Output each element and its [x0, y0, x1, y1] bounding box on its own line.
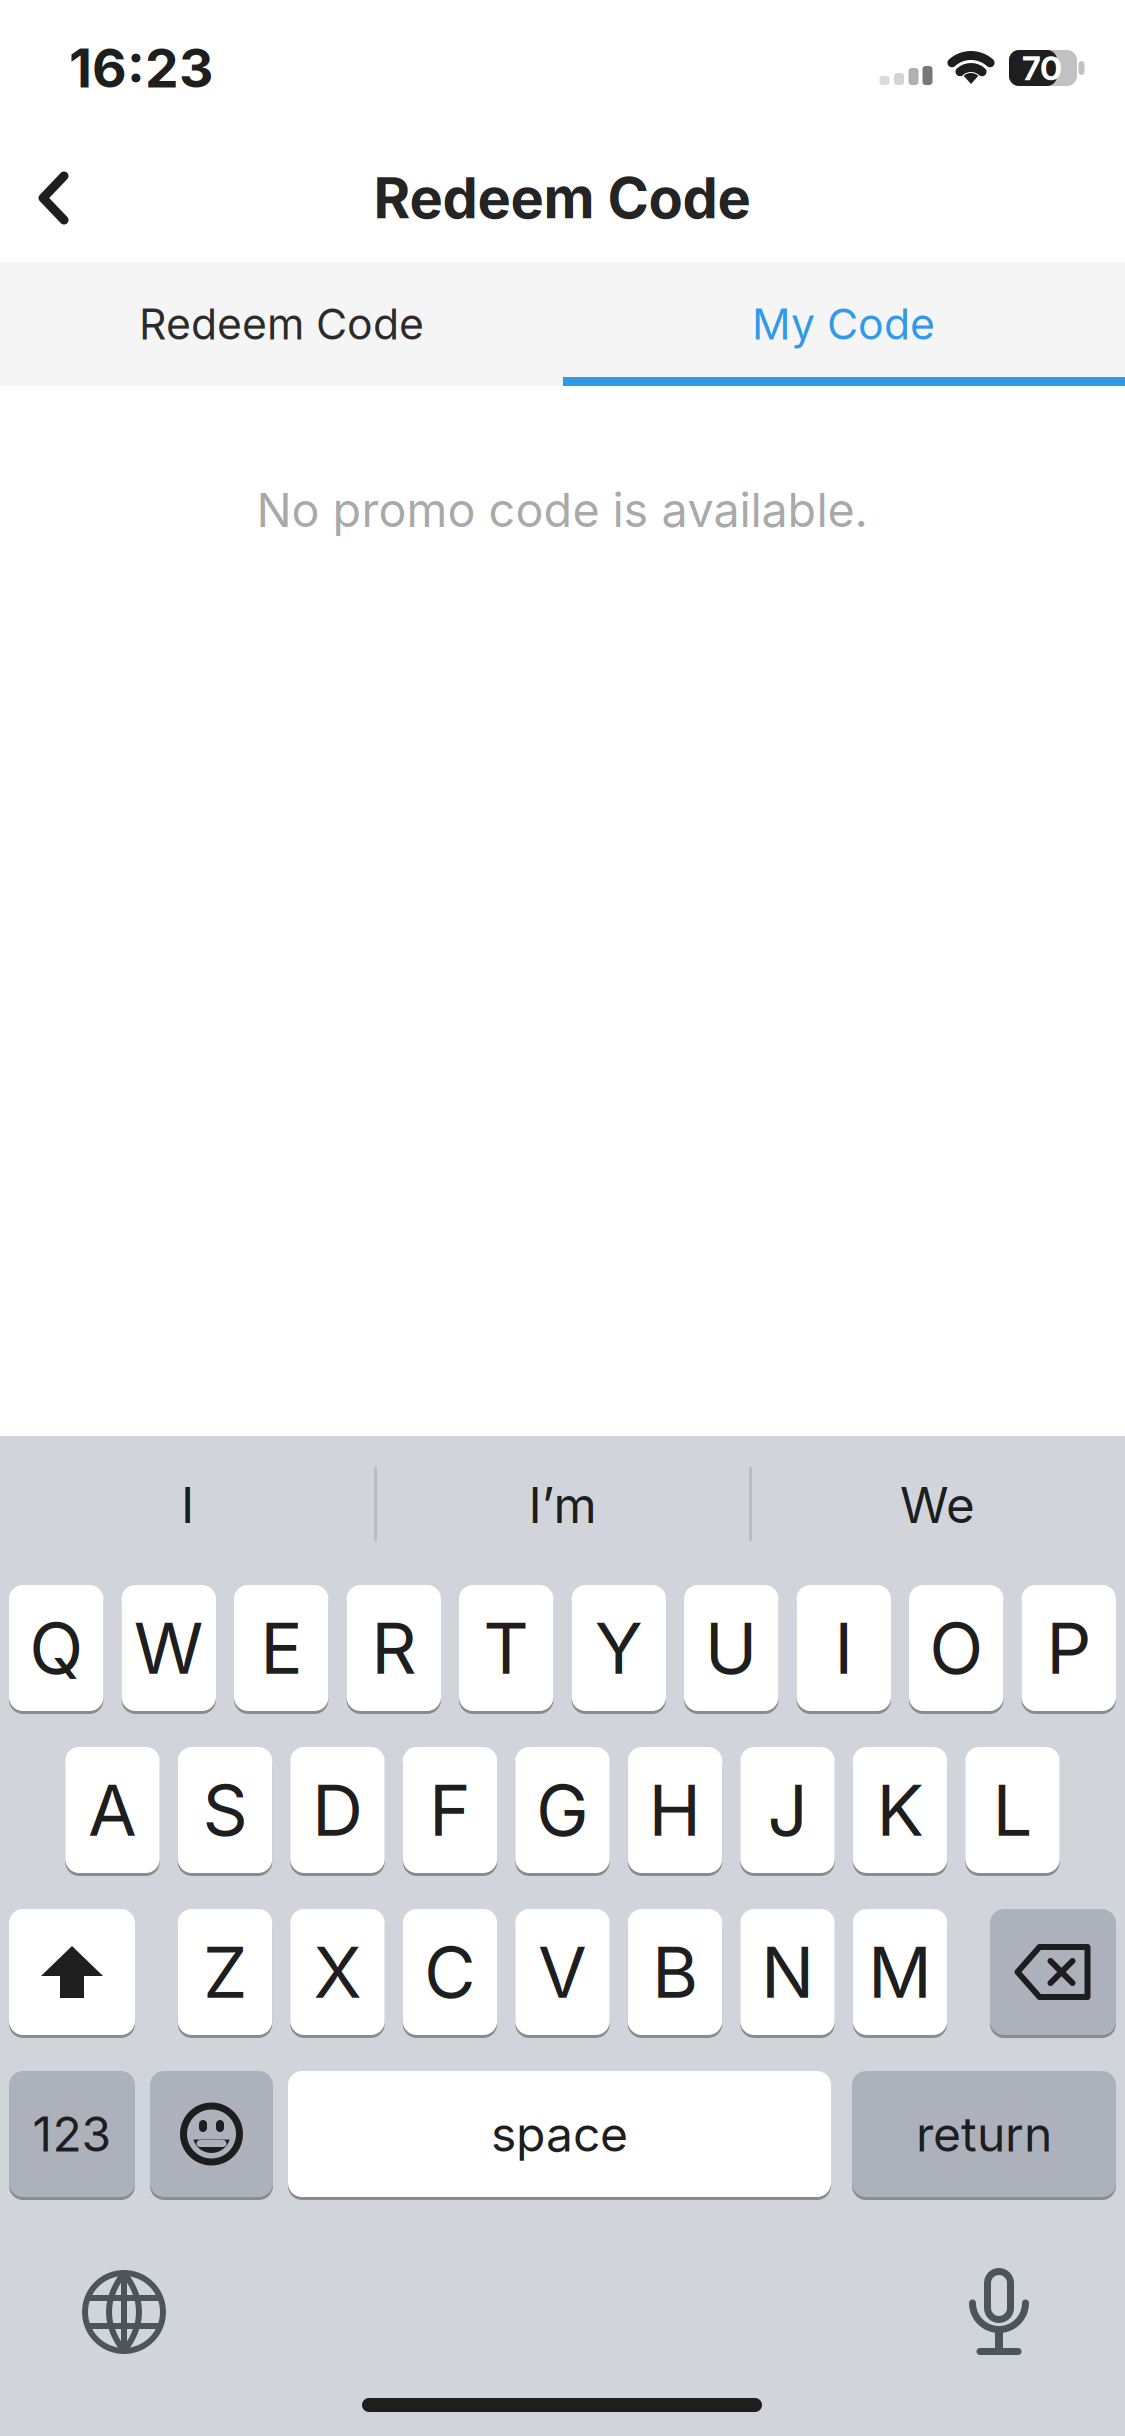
- staticText: space: [491, 2106, 628, 2162]
- staticText: H: [648, 1768, 701, 1852]
- button[interactable]: Next keyboard: [64, 2252, 184, 2372]
- staticText: M: [868, 1930, 932, 2014]
- button[interactable]: W: [121, 1585, 216, 1711]
- button[interactable]: S: [178, 1747, 272, 1873]
- button[interactable]: X: [290, 1909, 385, 2035]
- staticText: No promo code is available.: [256, 482, 867, 538]
- button[interactable]: We: [767, 1440, 1107, 1570]
- button[interactable]: O: [909, 1585, 1003, 1711]
- button[interactable]: R: [346, 1585, 441, 1711]
- button[interactable]: Dictation: [944, 2257, 1054, 2367]
- button[interactable]: L: [965, 1747, 1060, 1873]
- staticText: Y: [595, 1606, 643, 1690]
- staticText: N: [761, 1930, 814, 2014]
- staticText: V: [538, 1930, 587, 2014]
- staticText: I: [834, 1606, 853, 1690]
- staticText: Z: [203, 1930, 247, 2014]
- button[interactable]: J: [740, 1747, 835, 1873]
- staticText: J: [767, 1768, 807, 1852]
- staticText: A: [88, 1768, 137, 1852]
- button[interactable]: F: [403, 1747, 497, 1873]
- button[interactable]: Back: [14, 158, 94, 238]
- staticText: K: [876, 1768, 923, 1852]
- staticText: return: [916, 2106, 1052, 2162]
- staticText: Redeem Code: [373, 165, 750, 231]
- staticText: P: [1046, 1606, 1091, 1690]
- staticText: 70: [1022, 48, 1062, 88]
- staticText: Q: [29, 1606, 83, 1690]
- button[interactable]: Shift: [9, 1909, 135, 2035]
- button[interactable]: T: [459, 1585, 553, 1711]
- staticText: F: [429, 1768, 471, 1852]
- staticText: B: [652, 1930, 698, 2014]
- staticText: 123: [32, 2106, 111, 2162]
- staticText: G: [536, 1768, 589, 1852]
- staticText: My Code: [752, 299, 935, 349]
- staticText: We: [900, 1476, 975, 1534]
- button[interactable]: I: [17, 1440, 357, 1570]
- button[interactable]: I’m: [392, 1440, 732, 1570]
- button[interactable]: My Code: [562, 262, 1124, 386]
- button[interactable]: G: [515, 1747, 610, 1873]
- button[interactable]: Delete: [990, 1909, 1116, 2035]
- button[interactable]: Emoji: [150, 2071, 273, 2197]
- button[interactable]: return: [852, 2071, 1116, 2197]
- button[interactable]: Redeem Code: [0, 262, 562, 386]
- button[interactable]: D: [290, 1747, 385, 1873]
- staticText: L: [992, 1768, 1032, 1852]
- button[interactable]: B: [628, 1909, 722, 2035]
- staticText: S: [202, 1768, 247, 1852]
- staticText: I: [181, 1476, 194, 1534]
- button[interactable]: U: [684, 1585, 778, 1711]
- staticText: W: [134, 1606, 204, 1690]
- staticText: U: [705, 1606, 758, 1690]
- button[interactable]: I: [796, 1585, 891, 1711]
- staticText: T: [483, 1606, 529, 1690]
- button[interactable]: A: [65, 1747, 160, 1873]
- button[interactable]: Z: [178, 1909, 272, 2035]
- button[interactable]: N: [740, 1909, 835, 2035]
- staticText: 16:23: [69, 36, 213, 99]
- staticText: X: [313, 1930, 361, 2014]
- button[interactable]: space: [288, 2071, 831, 2197]
- button[interactable]: Y: [571, 1585, 666, 1711]
- button[interactable]: Q: [9, 1585, 103, 1711]
- button[interactable]: M: [853, 1909, 947, 2035]
- staticText: R: [371, 1606, 416, 1690]
- button[interactable]: C: [403, 1909, 497, 2035]
- button[interactable]: P: [1021, 1585, 1116, 1711]
- staticText: O: [929, 1606, 983, 1690]
- staticText: C: [424, 1930, 476, 2014]
- button[interactable]: Numbers: [9, 2071, 135, 2197]
- staticText: D: [312, 1768, 363, 1852]
- button[interactable]: K: [853, 1747, 947, 1873]
- button[interactable]: E: [234, 1585, 328, 1711]
- button[interactable]: H: [628, 1747, 722, 1873]
- staticText: I’m: [528, 1476, 596, 1534]
- staticText: Redeem Code: [139, 299, 424, 349]
- staticText: E: [260, 1606, 302, 1690]
- button[interactable]: V: [515, 1909, 610, 2035]
